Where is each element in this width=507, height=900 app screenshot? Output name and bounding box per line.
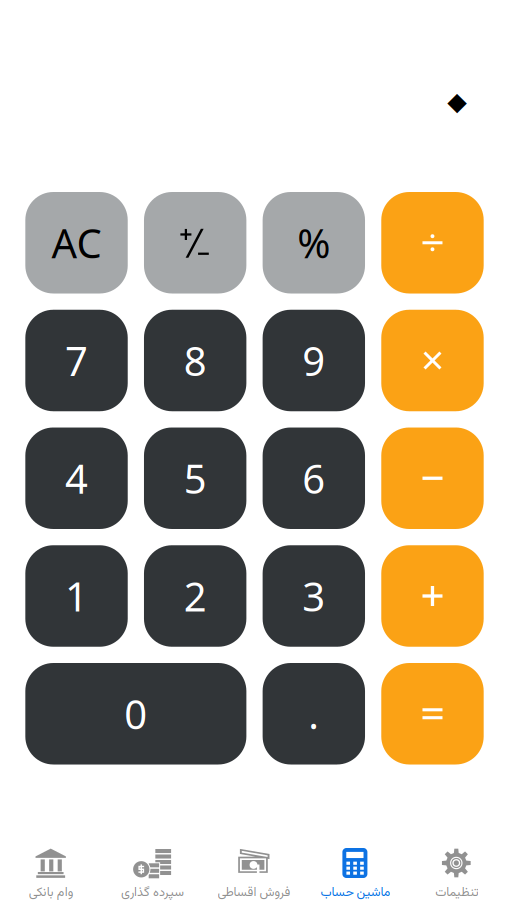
staticText: 5: [184, 452, 207, 505]
button[interactable]: 0: [25, 663, 246, 764]
staticText: 7: [65, 334, 88, 387]
staticText: 9: [302, 334, 325, 387]
button[interactable]: %: [263, 192, 365, 293]
button[interactable]: 7: [25, 310, 128, 411]
staticText: تنظیمات: [435, 883, 478, 900]
staticText: فروش اقساطی: [217, 883, 290, 900]
button[interactable]: 6: [263, 427, 365, 529]
staticText: ماشین حساب: [320, 883, 390, 900]
button[interactable]: Plus: [381, 545, 484, 647]
button[interactable]: 3: [263, 545, 365, 647]
staticText: .: [308, 687, 319, 740]
staticText: ٠: [439, 28, 475, 178]
button[interactable]: 9: [263, 310, 365, 411]
button[interactable]: AC: [25, 192, 128, 293]
button[interactable]: سپرده گذاری: [101, 820, 203, 900]
button[interactable]: Plus minus: [144, 192, 246, 293]
button[interactable]: 2: [144, 545, 246, 647]
staticText: 0: [124, 687, 147, 740]
button[interactable]: وام بانکی: [0, 820, 101, 900]
button[interactable]: Divide: [381, 192, 484, 293]
staticText: 3: [302, 569, 325, 622]
staticText: 2: [184, 569, 207, 622]
button[interactable]: 4: [25, 427, 128, 529]
staticText: 8: [184, 334, 207, 387]
button[interactable]: Equals: [381, 663, 484, 764]
button[interactable]: ماشین حساب: [304, 820, 406, 900]
button[interactable]: Minus: [381, 427, 484, 529]
button[interactable]: 5: [144, 427, 246, 529]
staticText: وام بانکی: [28, 883, 73, 900]
staticText: 4: [65, 452, 88, 505]
staticText: %: [297, 216, 330, 269]
button[interactable]: .: [263, 663, 365, 764]
button[interactable]: فروش اقساطی: [203, 820, 304, 900]
button[interactable]: تنظیمات: [406, 820, 507, 900]
staticText: سپرده گذاری: [121, 883, 184, 900]
staticText: 6: [302, 452, 325, 505]
staticText: AC: [51, 216, 101, 269]
button[interactable]: 1: [25, 545, 128, 647]
button[interactable]: 8: [144, 310, 246, 411]
staticText: 1: [65, 569, 88, 622]
button[interactable]: Multiply: [381, 310, 484, 411]
